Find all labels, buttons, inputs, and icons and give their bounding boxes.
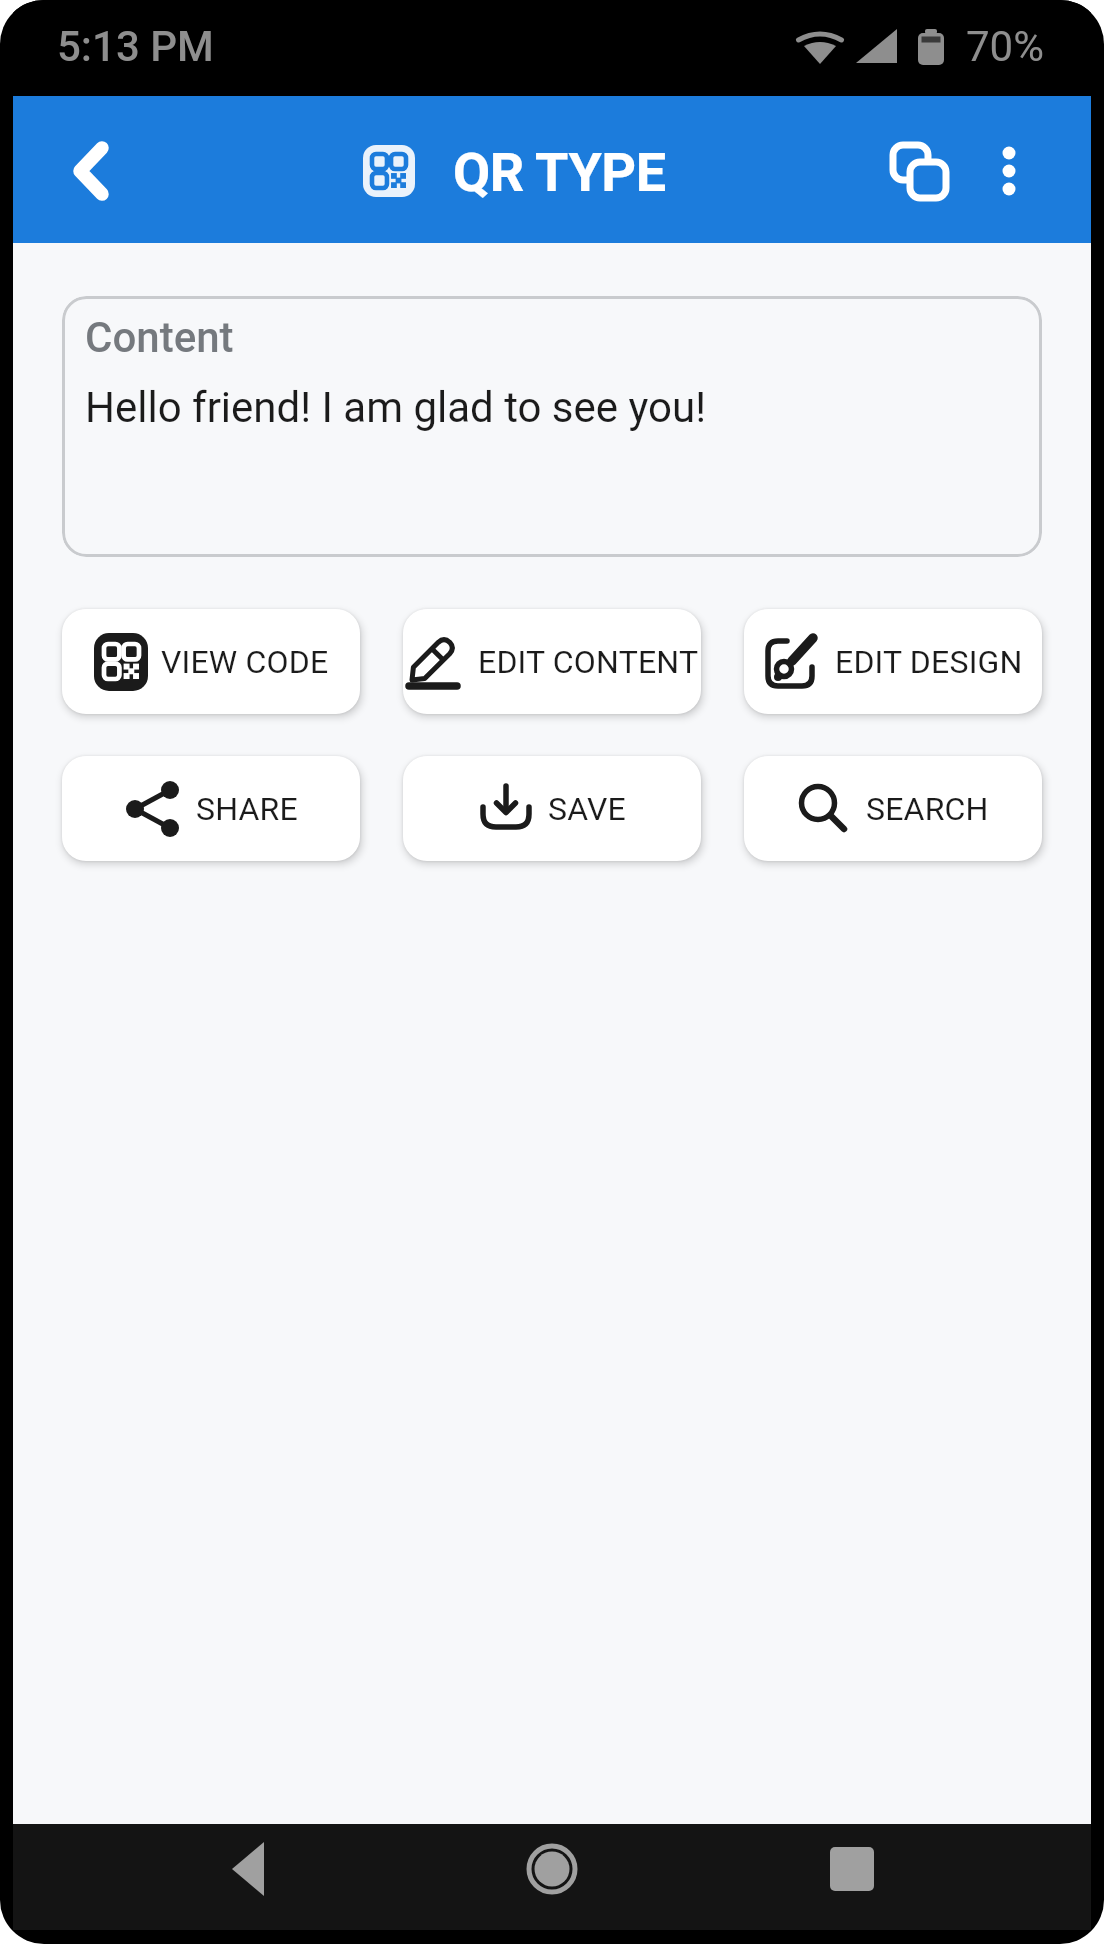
staticText: 5:13 PM [57, 22, 214, 71]
button[interactable] [65, 124, 143, 202]
button[interactable]: Content [62, 296, 1042, 557]
button[interactable] [203, 1824, 293, 1914]
button[interactable]: VIEW CODE [62, 609, 360, 714]
staticText: 70% [966, 22, 1044, 71]
button[interactable]: SAVE [403, 756, 701, 861]
staticText: Hello friend! I am glad to see you! [85, 383, 706, 432]
staticText: VIEW CODE [161, 643, 329, 681]
button[interactable]: EDIT CONTENT [403, 609, 701, 714]
button[interactable] [875, 131, 963, 209]
staticText: SAVE [548, 790, 626, 828]
button[interactable]: SHARE [62, 756, 360, 861]
button[interactable] [975, 126, 1045, 214]
staticText: QR TYPE [453, 141, 666, 204]
staticText: SEARCH [866, 790, 989, 828]
button[interactable]: EDIT DESIGN [744, 609, 1042, 714]
button[interactable] [807, 1824, 897, 1914]
button[interactable]: SEARCH [744, 756, 1042, 861]
staticText: SHARE [196, 790, 298, 828]
staticText: EDIT DESIGN [835, 643, 1023, 681]
staticText: EDIT CONTENT [478, 643, 699, 681]
button[interactable] [507, 1824, 597, 1914]
staticText: Content [85, 313, 234, 362]
